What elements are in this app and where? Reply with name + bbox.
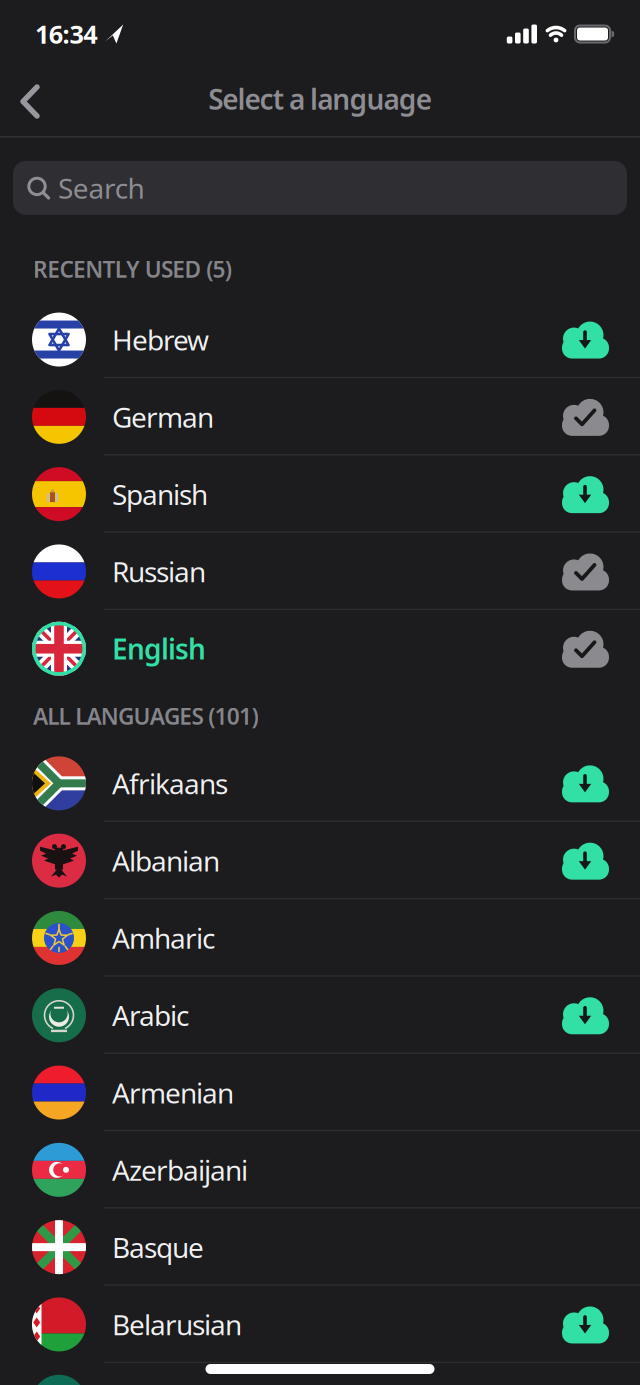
button[interactable]: Afrikaans	[0, 745, 640, 822]
button[interactable]	[559, 319, 611, 359]
staticText: Russian	[112, 553, 206, 590]
staticText: English	[112, 630, 206, 667]
staticText: RECENTLY USED (5)	[33, 254, 232, 284]
staticText: Hebrew	[112, 321, 209, 358]
button[interactable]: Russian	[0, 533, 640, 610]
button[interactable]: Search	[0, 161, 640, 215]
button[interactable]: Armenian	[0, 1054, 640, 1131]
button[interactable]: Albanian	[0, 822, 640, 899]
button[interactable]	[559, 1304, 611, 1344]
button[interactable]	[559, 397, 611, 437]
button[interactable]	[559, 841, 611, 881]
staticText: German	[112, 398, 214, 435]
staticText: 16:34	[35, 17, 97, 51]
button[interactable]: Basque	[0, 1208, 640, 1286]
staticText: Armenian	[112, 1074, 234, 1111]
button[interactable]	[0, 81, 38, 117]
button[interactable]	[559, 629, 611, 669]
button[interactable]	[559, 551, 611, 591]
button[interactable]: Hebrew	[0, 301, 640, 378]
staticText: Select a language	[208, 80, 432, 118]
button[interactable]: Arabic	[0, 977, 640, 1054]
staticText: Basque	[112, 1229, 204, 1266]
staticText: Belarusian	[112, 1306, 242, 1343]
staticText: Spanish	[112, 476, 208, 513]
staticText: Amharic	[112, 919, 215, 957]
button[interactable]: Belarusian	[0, 1286, 640, 1363]
staticText: ALL LANGUAGES (101)	[33, 701, 258, 731]
button[interactable]: Bengali	[0, 1363, 640, 1385]
button[interactable]	[559, 995, 611, 1035]
staticText: Arabic	[112, 997, 189, 1034]
button[interactable]	[559, 474, 611, 514]
button[interactable]	[559, 763, 611, 803]
button[interactable]: English	[0, 610, 640, 687]
staticText: Albanian	[112, 842, 220, 879]
staticText: Afrikaans	[112, 765, 228, 802]
staticText: Search	[58, 169, 144, 206]
button[interactable]: Azerbaijani	[0, 1131, 640, 1208]
button[interactable]: Spanish	[0, 455, 640, 533]
button[interactable]: Amharic	[0, 899, 640, 977]
button[interactable]: German	[0, 378, 640, 455]
staticText: Azerbaijani	[112, 1151, 248, 1188]
